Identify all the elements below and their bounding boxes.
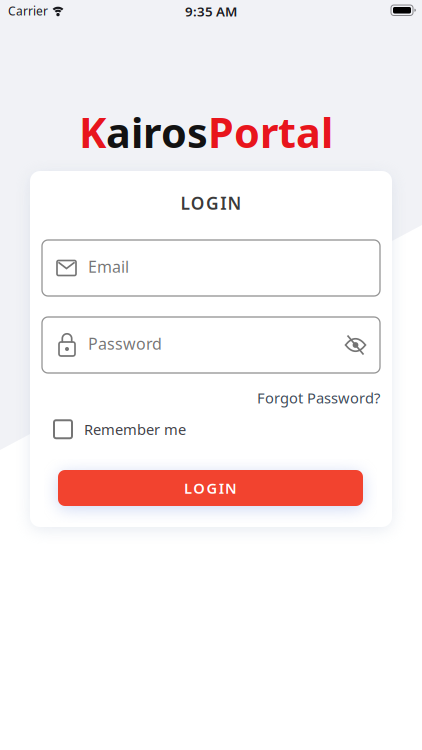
staticText: I	[219, 478, 224, 498]
staticText: I	[220, 191, 226, 214]
button[interactable]: LOGIN	[58, 470, 363, 506]
staticText: airos	[106, 104, 208, 159]
staticText: L	[180, 191, 189, 214]
staticText: N	[228, 191, 242, 214]
staticText: N	[225, 478, 237, 498]
staticText: K	[79, 104, 106, 159]
button[interactable]: Show password	[345, 335, 366, 355]
staticText: Portal	[208, 104, 333, 159]
button[interactable]: Forgot Password?	[257, 388, 380, 407]
staticText: 9:35 AM	[185, 2, 237, 20]
button[interactable]: Remember me	[54, 419, 186, 439]
staticText: Password	[88, 333, 162, 354]
staticText: O	[193, 478, 205, 498]
staticText: Email	[88, 256, 129, 277]
staticText: Remember me	[84, 419, 186, 439]
staticText: Carrier	[8, 3, 48, 19]
staticText: G	[206, 478, 217, 498]
staticText: O	[191, 191, 205, 214]
staticText: G	[206, 191, 219, 214]
staticText: Forgot Password?	[257, 388, 380, 407]
staticText: L	[184, 478, 192, 498]
